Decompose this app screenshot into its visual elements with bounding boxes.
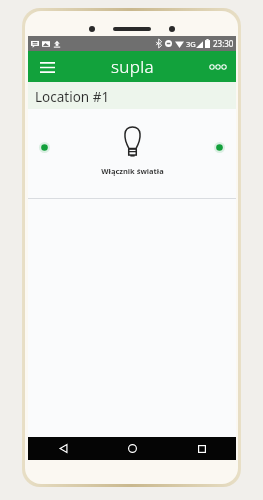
staticText: 3G	[186, 39, 196, 49]
button[interactable]: Home	[98, 437, 167, 460]
staticText: 23:30	[213, 38, 234, 49]
button[interactable]: Włącznik światła	[28, 109, 236, 198]
button[interactable]: Location #1	[28, 82, 236, 109]
button[interactable]: More options	[205, 54, 231, 80]
staticText: supla	[111, 55, 154, 78]
staticText: Włącznik światła	[101, 166, 164, 176]
staticText: Location #1	[35, 88, 110, 106]
button[interactable]: Open navigation menu	[34, 54, 60, 80]
button[interactable]: Recent apps	[167, 437, 236, 460]
button[interactable]: Back	[28, 437, 98, 460]
